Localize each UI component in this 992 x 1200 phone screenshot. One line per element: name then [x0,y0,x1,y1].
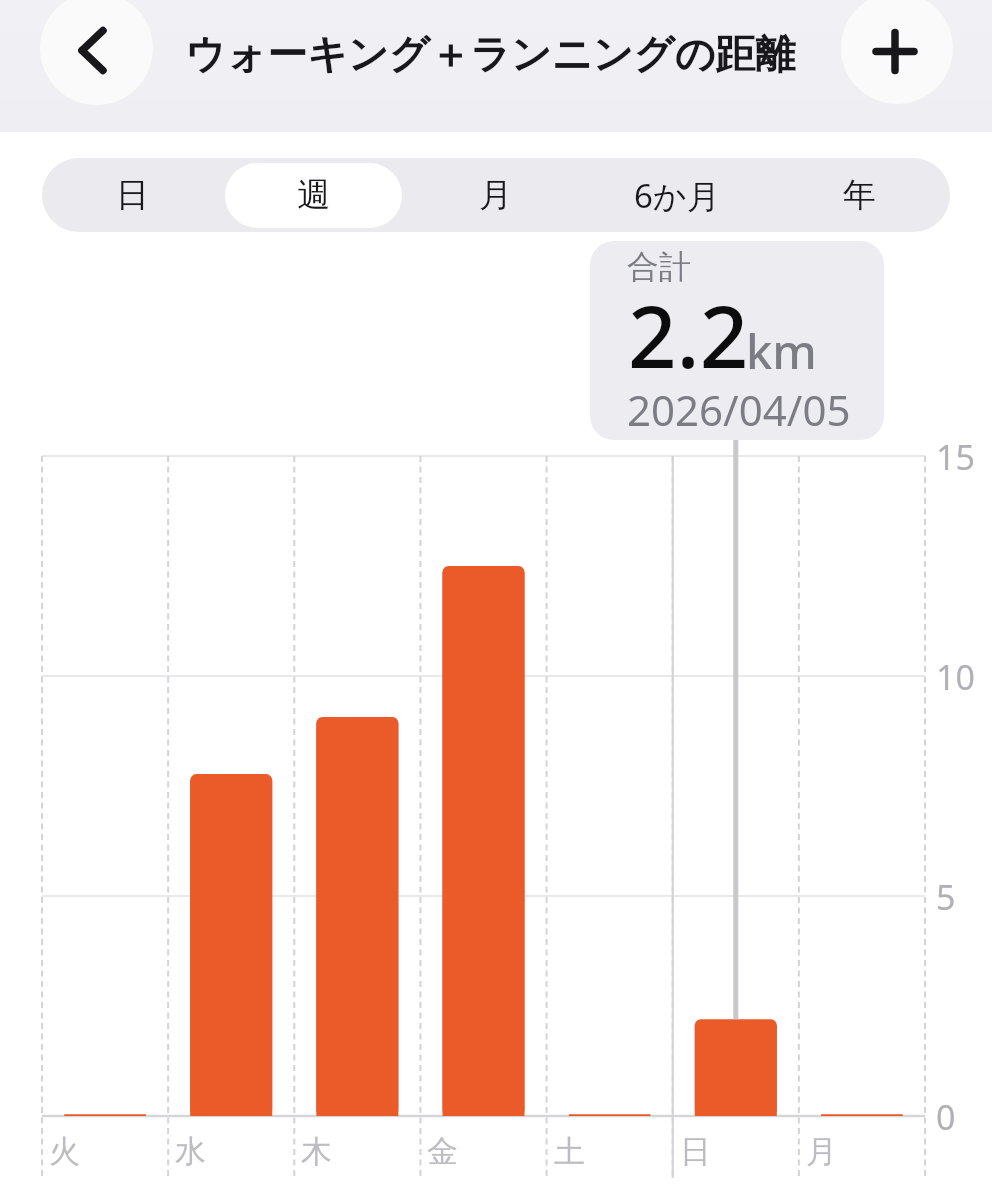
button[interactable]: 6か月 [586,158,768,232]
staticText: km [746,319,817,383]
staticText: 日 [680,1132,711,1171]
button[interactable]: Add [841,0,953,104]
staticText: ウォーキング＋ランニングの距離 [185,29,796,79]
staticText: 木 [301,1132,332,1171]
staticText: 年 [843,174,876,216]
staticText: 5 [936,874,956,920]
button[interactable]: Back [40,0,153,105]
staticText: 2026/04/05 [627,381,851,438]
button[interactable]: 週 [223,158,404,232]
staticText: 6か月 [634,173,720,218]
button[interactable]: 日 [42,158,223,232]
button[interactable]: Distance chart [42,456,925,1116]
staticText: 合計 [627,247,691,287]
staticText: 土 [554,1132,585,1171]
staticText: 月 [806,1132,837,1171]
staticText: 0 [936,1094,956,1140]
staticText: 10 [936,654,975,700]
staticText: 月 [479,174,512,216]
staticText: 15 [936,434,975,480]
staticText: 日 [116,174,149,216]
staticText: 金 [427,1132,458,1171]
staticText: 週 [297,174,330,216]
button[interactable]: 年 [768,158,950,232]
staticText: 水 [175,1132,206,1171]
button[interactable]: 月 [404,158,586,232]
staticText: 火 [49,1132,80,1171]
staticText: 2.2 [628,277,749,393]
